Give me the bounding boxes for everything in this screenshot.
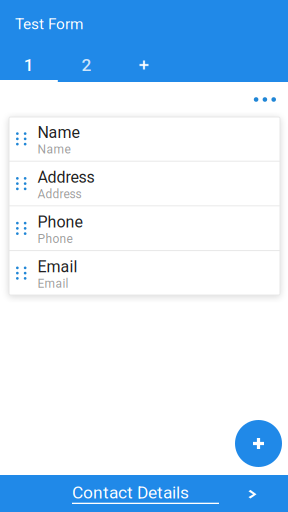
staticText: Email — [37, 277, 68, 291]
button[interactable]: Add field — [235, 420, 282, 467]
button[interactable]: Email — [9, 251, 280, 295]
button[interactable]: 1 — [0, 48, 58, 82]
staticText: Phone — [37, 232, 72, 246]
staticText: 2 — [81, 55, 91, 75]
button[interactable]: Contact Details — [72, 484, 219, 502]
staticText: Contact Details — [72, 482, 189, 503]
button[interactable]: 2 — [58, 48, 115, 82]
button[interactable]: Name — [9, 117, 280, 161]
staticText: Address — [37, 168, 94, 187]
staticText: Test Form — [15, 15, 83, 33]
staticText: 1 — [24, 55, 34, 75]
button[interactable]: More options — [254, 82, 288, 117]
staticText: Phone — [37, 213, 82, 231]
staticText: Name — [37, 123, 79, 142]
staticText: Name — [37, 142, 70, 157]
button[interactable]: Address — [9, 162, 280, 206]
button[interactable]: Phone — [9, 206, 280, 250]
staticText: Address — [37, 187, 81, 201]
button[interactable]: Add page — [115, 48, 173, 82]
button[interactable]: Next page — [237, 479, 267, 509]
staticText: Email — [37, 257, 77, 276]
